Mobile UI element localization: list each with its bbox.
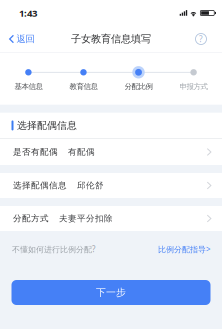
staticText: 夫妻平分扣除 [59,213,113,224]
button[interactable]: 下一步 [11,280,210,305]
staticText: 是否有配偶 [13,147,58,157]
staticText: 教育信息 [69,82,97,91]
button[interactable]: 选择配偶信息 [0,173,222,198]
button[interactable]: 帮助 [187,26,222,52]
staticText: 返回 [17,33,35,45]
button[interactable]: 分配方式 [0,206,222,231]
button[interactable]: 不懂如何进行比例分配? [0,231,222,260]
staticText: 不懂如何进行比例分配? [12,244,95,255]
button[interactable]: 是否有配偶 [0,139,222,165]
button[interactable]: 返回 [0,26,43,52]
staticText: 子女教育信息填写 [71,33,151,45]
staticText: 下一步 [96,286,126,299]
staticText: 分配比例 [124,82,152,91]
staticText: 选择配偶信息 [17,119,77,132]
staticText: 有配偶 [68,147,95,157]
staticText: 邱伦舒 [77,180,104,191]
staticText: 1:43 [19,6,37,20]
staticText: 申报方式 [180,82,208,91]
staticText: 基本信息 [14,82,42,91]
staticText: 分配方式 [13,213,49,224]
staticText: 选择配偶信息 [13,180,67,191]
staticText: ? [199,33,203,45]
staticText: 比例分配指导> [158,244,211,255]
